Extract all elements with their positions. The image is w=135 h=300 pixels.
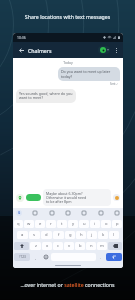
button[interactable]: Send location bbox=[26, 194, 41, 201]
staticText: Do you want to meet up later today? bbox=[61, 69, 117, 79]
staticText: h bbox=[80, 232, 83, 238]
staticText: i bbox=[94, 221, 96, 227]
button[interactable]: m bbox=[97, 242, 107, 250]
button[interactable]: Yes sounds good, where do you want to me… bbox=[19, 91, 73, 101]
staticText: r bbox=[50, 221, 52, 227]
button[interactable]: Send bbox=[106, 253, 122, 261]
button[interactable]: t bbox=[57, 220, 67, 228]
staticText: m bbox=[100, 243, 104, 249]
button[interactable]: w bbox=[24, 220, 34, 228]
staticText: Share locations with text messages bbox=[0, 13, 135, 20]
button[interactable]: ?123 bbox=[14, 253, 30, 261]
button[interactable]: r bbox=[46, 220, 56, 228]
staticText: . bbox=[100, 255, 102, 260]
staticText: Sent ✓ bbox=[110, 82, 119, 86]
button[interactable]: Call bbox=[98, 46, 110, 54]
button[interactable]: Stickers bbox=[32, 210, 38, 216]
button[interactable]: p bbox=[112, 220, 122, 228]
button[interactable]: Back bbox=[16, 45, 26, 55]
staticText: j bbox=[91, 232, 93, 238]
button[interactable]: More bbox=[98, 210, 104, 216]
button[interactable]: v bbox=[64, 242, 74, 250]
staticText: ?123 bbox=[19, 255, 26, 259]
staticText: u bbox=[83, 221, 86, 227]
staticText: k bbox=[102, 232, 105, 238]
staticText: d bbox=[45, 232, 48, 238]
button[interactable]: o bbox=[101, 220, 111, 228]
button[interactable]: Emoji bbox=[41, 253, 50, 261]
staticText: Today bbox=[16, 60, 120, 65]
button[interactable]: s bbox=[29, 231, 40, 239]
button[interactable]: c bbox=[53, 242, 63, 250]
staticText: ...over internet or satellite connection… bbox=[0, 281, 135, 288]
staticText: c bbox=[57, 243, 60, 249]
button[interactable]: e bbox=[35, 220, 45, 228]
staticText: e bbox=[39, 221, 42, 227]
staticText: , bbox=[35, 255, 37, 260]
button[interactable]: z bbox=[30, 242, 41, 250]
staticText: Chalmers bbox=[28, 47, 98, 54]
button[interactable]: More options bbox=[112, 46, 120, 54]
button[interactable]: g bbox=[65, 231, 75, 239]
button[interactable]: u bbox=[79, 220, 89, 228]
staticText: t bbox=[61, 221, 63, 227]
button[interactable]: Clipboard bbox=[65, 210, 71, 216]
staticText: o bbox=[105, 221, 108, 227]
button[interactable]: Maybe about 6.30pm? Otherwise it would n… bbox=[46, 191, 108, 204]
button[interactable]: Shift bbox=[14, 242, 29, 250]
staticText: l bbox=[113, 232, 115, 238]
button[interactable]: Comma bbox=[31, 253, 40, 261]
button[interactable]: a bbox=[17, 231, 28, 239]
staticText: w bbox=[27, 221, 31, 227]
staticText: p bbox=[116, 221, 119, 227]
button[interactable]: n bbox=[86, 242, 96, 250]
button[interactable]: Do you want to meet up later today? bbox=[61, 69, 117, 79]
button[interactable]: y bbox=[68, 220, 78, 228]
button[interactable]: j bbox=[87, 231, 97, 239]
button[interactable]: GIF bbox=[49, 210, 55, 216]
button[interactable]: Settings bbox=[81, 210, 87, 216]
button[interactable]: h bbox=[76, 231, 86, 239]
button[interactable]: b bbox=[75, 242, 85, 250]
staticText: y bbox=[72, 221, 75, 227]
staticText: q bbox=[17, 221, 20, 227]
staticText: b bbox=[79, 243, 82, 249]
button[interactable]: i bbox=[90, 220, 100, 228]
staticText: a bbox=[21, 232, 24, 238]
staticText: n bbox=[90, 243, 93, 249]
button[interactable]: d bbox=[41, 231, 52, 239]
staticText: z bbox=[35, 243, 37, 249]
button[interactable]: l bbox=[109, 231, 119, 239]
staticText: 10:36 bbox=[17, 35, 26, 40]
staticText: f bbox=[58, 232, 60, 238]
button[interactable]: Google assistant bbox=[16, 210, 22, 216]
button[interactable]: q bbox=[14, 220, 23, 228]
button[interactable]: Location bbox=[16, 194, 24, 202]
staticText: Yes sounds good, where do you want to me… bbox=[19, 91, 73, 101]
staticText: s bbox=[33, 232, 36, 238]
button[interactable]: k bbox=[98, 231, 108, 239]
staticText: x bbox=[46, 243, 49, 249]
staticText: g bbox=[69, 232, 72, 238]
staticText: G bbox=[18, 211, 21, 215]
staticText: Maybe about 6.30pm? Otherwise it would n… bbox=[46, 191, 87, 204]
button[interactable]: f bbox=[53, 231, 64, 239]
staticText: v bbox=[68, 243, 71, 249]
button[interactable]: x bbox=[42, 242, 52, 250]
button[interactable]: Voice input bbox=[114, 210, 120, 216]
button[interactable]: Emoji reaction bbox=[113, 194, 120, 201]
button[interactable]: Backspace bbox=[108, 242, 122, 250]
